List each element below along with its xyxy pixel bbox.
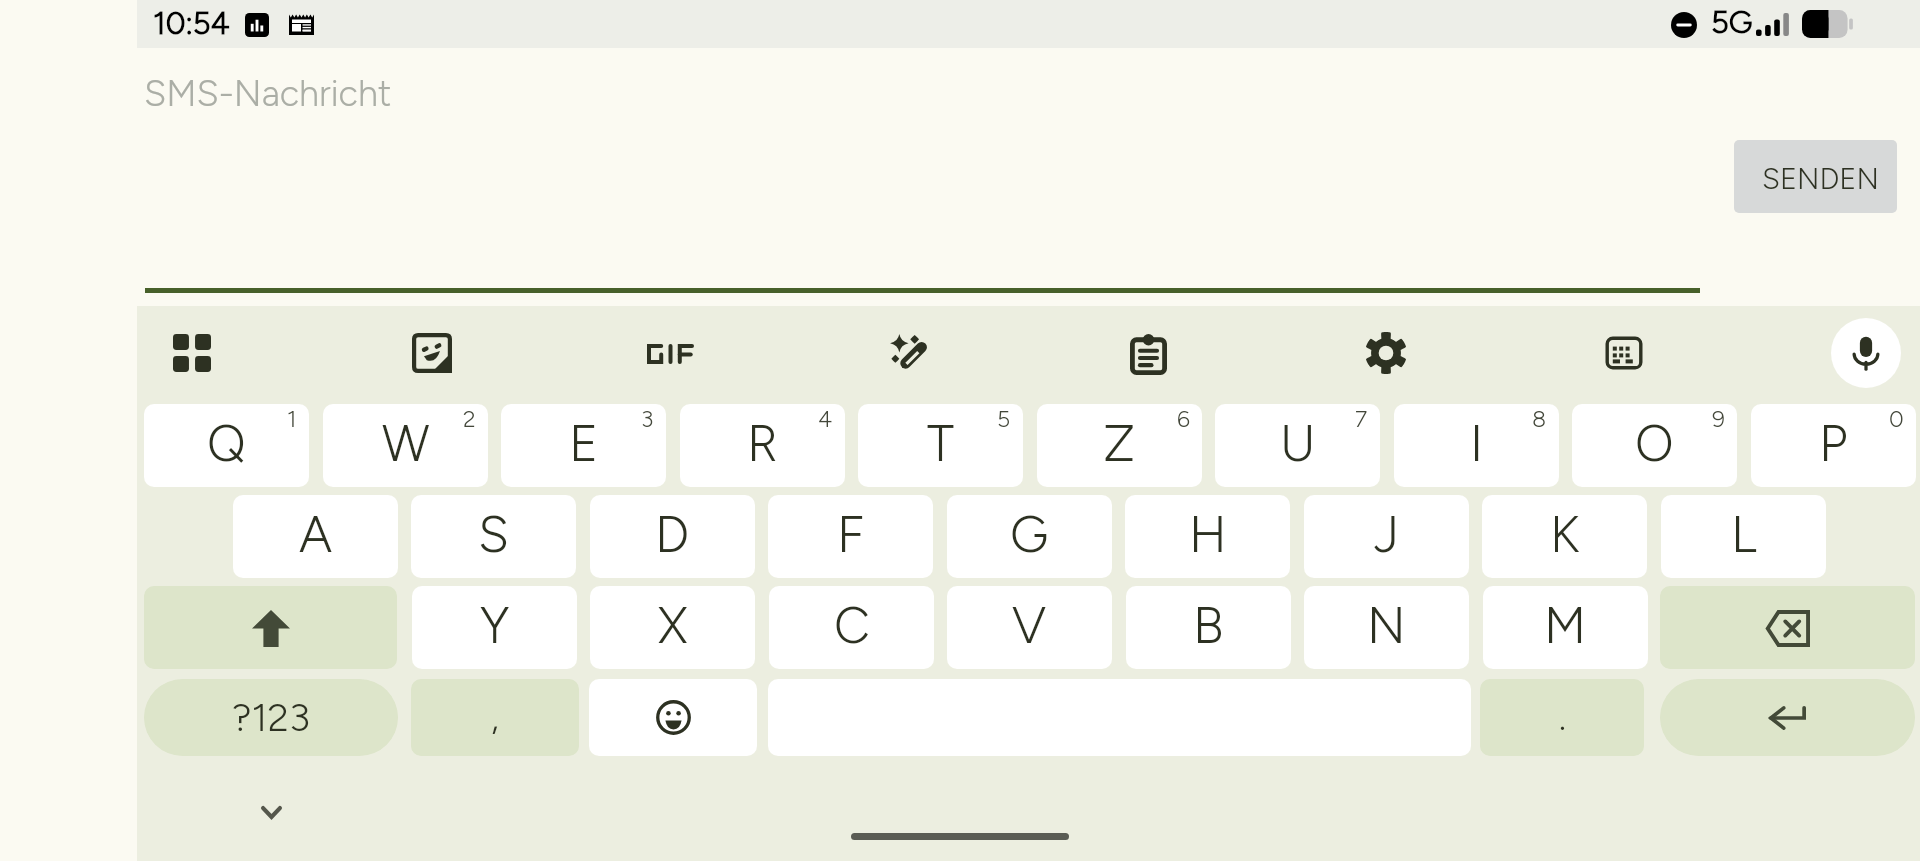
button[interactable]: S — [411, 495, 576, 578]
button[interactable]: Themes — [159, 320, 225, 386]
button[interactable]: Emoji — [589, 679, 757, 756]
staticText: V — [1012, 595, 1047, 655]
staticText: 8 — [1532, 405, 1547, 433]
staticText: Y — [480, 595, 510, 655]
button[interactable]: U — [1215, 404, 1380, 487]
staticText: K — [1550, 504, 1580, 564]
button[interactable]: P — [1751, 404, 1916, 487]
button[interactable]: M — [1483, 586, 1648, 669]
button[interactable]: H — [1125, 495, 1290, 578]
staticText: I — [1470, 413, 1484, 473]
staticText: D — [655, 504, 690, 564]
staticText: 5 — [997, 405, 1011, 433]
staticText: C — [834, 595, 870, 655]
button[interactable]: Q — [144, 404, 309, 487]
button[interactable]: N — [1304, 586, 1469, 669]
button[interactable]: F — [768, 495, 933, 578]
staticText: J — [1374, 504, 1399, 564]
staticText: S — [478, 504, 509, 564]
staticText: T — [927, 413, 954, 473]
button[interactable]: Enter — [1660, 679, 1915, 756]
staticText: X — [658, 595, 688, 655]
staticText: 0 — [1889, 405, 1904, 433]
button[interactable]: Voice input — [1831, 318, 1901, 388]
staticText: N — [1367, 595, 1406, 655]
staticText: 10:54 — [153, 5, 230, 42]
button[interactable]: X — [590, 586, 755, 669]
button[interactable]: Period — [1480, 679, 1644, 756]
staticText: , — [491, 696, 499, 739]
button[interactable]: C — [769, 586, 934, 669]
button[interactable]: Stickers — [399, 320, 465, 386]
button[interactable]: V — [947, 586, 1112, 669]
button[interactable]: W — [323, 404, 488, 487]
staticText: O — [1635, 413, 1674, 473]
button[interactable]: A — [233, 495, 398, 578]
button[interactable]: Y — [412, 586, 577, 669]
staticText: 6 — [1177, 405, 1190, 433]
staticText: . — [1559, 696, 1566, 739]
button[interactable]: Edit — [876, 320, 942, 386]
button[interactable]: GIF — [637, 321, 703, 387]
staticText: P — [1819, 413, 1848, 473]
button[interactable]: Comma — [411, 679, 579, 756]
staticText: Q — [207, 413, 246, 473]
button[interactable]: B — [1126, 586, 1291, 669]
staticText: A — [299, 504, 333, 564]
button[interactable]: Settings — [1353, 320, 1419, 386]
button[interactable]: Keyboard layout — [1591, 320, 1657, 386]
staticText: W — [382, 413, 430, 473]
staticText: 5G — [1711, 4, 1753, 41]
staticText: 4 — [818, 405, 833, 433]
staticText: B — [1193, 595, 1224, 655]
button[interactable]: Z — [1037, 404, 1202, 487]
button[interactable]: J — [1304, 495, 1469, 578]
staticText: L — [1731, 504, 1757, 564]
button[interactable]: E — [501, 404, 666, 487]
staticText: 7 — [1355, 405, 1368, 433]
button[interactable]: Clipboard — [1115, 321, 1181, 387]
button[interactable]: T — [858, 404, 1023, 487]
button[interactable]: G — [947, 495, 1112, 578]
staticText: SMS-Nachricht — [144, 72, 392, 115]
staticText: H — [1189, 504, 1227, 564]
button[interactable] — [144, 679, 398, 756]
staticText: R — [747, 413, 778, 473]
button[interactable]: O — [1572, 404, 1737, 487]
button[interactable]: K — [1482, 495, 1647, 578]
button[interactable]: R — [680, 404, 845, 487]
button[interactable]: Backspace — [1660, 586, 1915, 669]
button[interactable]: Hide keyboard — [246, 787, 296, 837]
staticText: 1 — [287, 405, 297, 433]
button[interactable]: Shift — [144, 586, 397, 669]
staticText: SENDEN — [1762, 161, 1879, 196]
staticText: 2 — [463, 405, 476, 433]
staticText: E — [569, 413, 599, 473]
staticText: ?123 — [232, 694, 311, 741]
staticText: U — [1280, 413, 1316, 473]
staticText: F — [837, 504, 864, 564]
staticText: Z — [1103, 413, 1136, 473]
button[interactable]: SENDEN — [1734, 140, 1897, 213]
button[interactable]: I — [1394, 404, 1559, 487]
staticText: 3 — [641, 405, 654, 433]
button[interactable]: D — [590, 495, 755, 578]
button[interactable]: L — [1661, 495, 1826, 578]
staticText: M — [1544, 595, 1587, 655]
staticText: G — [1010, 504, 1049, 564]
staticText: 9 — [1712, 405, 1725, 433]
